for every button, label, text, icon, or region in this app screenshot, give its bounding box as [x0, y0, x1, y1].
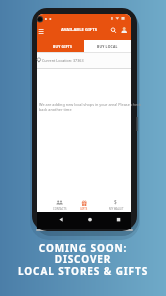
button[interactable]: Current Location: 37363 — [37, 53, 131, 68]
button[interactable] — [121, 26, 130, 36]
button[interactable]: GIFTS — [71, 196, 97, 212]
button[interactable] — [110, 26, 119, 36]
staticText: BUY LOCAL — [97, 44, 118, 49]
staticText: GIFTS — [80, 207, 88, 211]
button[interactable]: BUY GIFTS — [37, 40, 84, 53]
staticText: Current Location: 37363 — [42, 58, 84, 63]
button[interactable]: CONTACTS — [46, 196, 73, 212]
button[interactable] — [37, 27, 46, 37]
staticText: MY WALLET — [109, 207, 124, 211]
staticText: BUY GIFTS — [53, 44, 73, 49]
staticText: CONTACTS — [53, 207, 67, 211]
staticText: We are adding new local shops in your ar… — [39, 102, 141, 112]
button[interactable]: BUY LOCAL — [84, 40, 131, 53]
staticText: $ — [114, 199, 117, 205]
staticText: AVAILABLE GIFTS — [61, 27, 98, 33]
staticText: COMING SOON: DISCOVER LOCAL STORES & GIF… — [0, 241, 166, 278]
button[interactable]: MY WALLET — [102, 196, 130, 212]
